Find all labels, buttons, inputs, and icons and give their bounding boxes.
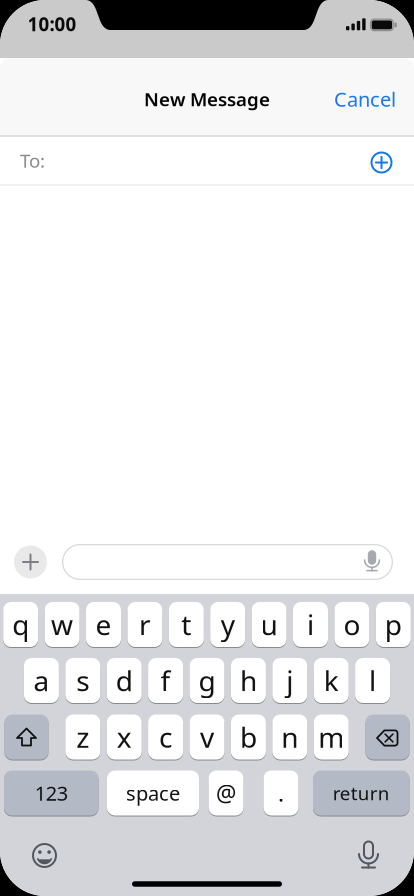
staticText: u [261, 606, 278, 643]
staticText: f [161, 662, 171, 699]
button[interactable] [370, 151, 392, 173]
button[interactable]: s [65, 657, 100, 703]
button[interactable]: space [107, 770, 199, 816]
button[interactable]: Cancel [334, 86, 396, 112]
button[interactable]: u [252, 601, 287, 647]
staticText: b [240, 718, 257, 756]
button[interactable]: t [169, 601, 204, 647]
button[interactable]: d [107, 657, 142, 703]
button[interactable]: . [263, 770, 298, 816]
button[interactable] [346, 832, 390, 876]
button[interactable]: r [127, 601, 162, 647]
button[interactable]: y [210, 601, 245, 647]
button[interactable]: k [314, 657, 349, 703]
button[interactable]: o [334, 601, 369, 647]
button[interactable]: m [314, 714, 349, 760]
staticText: Cancel [334, 86, 396, 112]
staticText: . [278, 778, 284, 808]
staticText: q [12, 606, 29, 643]
button[interactable]: j [272, 657, 307, 703]
staticText: c [159, 718, 172, 756]
staticText: To: [20, 148, 45, 173]
button[interactable]: w [45, 601, 80, 647]
staticText: k [324, 662, 339, 699]
button[interactable] [14, 545, 47, 578]
staticText: h [240, 662, 257, 699]
button[interactable]: p [376, 601, 411, 647]
button[interactable] [22, 833, 66, 877]
button[interactable]: b [231, 714, 266, 760]
staticText: g [198, 662, 215, 699]
staticText: l [369, 662, 376, 699]
staticText: v [200, 718, 214, 756]
staticText: 123 [35, 780, 68, 806]
staticText: 10:00 [27, 12, 76, 36]
button[interactable]: 123 [4, 770, 98, 816]
staticText: m [318, 718, 344, 756]
staticText: x [117, 718, 132, 756]
button[interactable]: i [293, 601, 328, 647]
staticText: i [307, 606, 314, 643]
staticText: s [76, 662, 89, 699]
staticText: r [139, 606, 151, 643]
button[interactable]: @ [208, 770, 243, 816]
staticText: e [95, 606, 111, 643]
button[interactable]: return [313, 770, 409, 816]
staticText: return [333, 781, 390, 805]
staticText: p [385, 606, 402, 643]
button[interactable]: l [355, 657, 390, 703]
button[interactable]: c [148, 714, 183, 760]
staticText: z [76, 718, 89, 756]
button[interactable]: q [3, 601, 38, 647]
staticText: t [181, 606, 191, 643]
staticText: New Message [144, 87, 270, 111]
staticText: j [286, 662, 293, 699]
staticText: o [343, 606, 360, 643]
button[interactable] [365, 714, 409, 760]
staticText: y [221, 606, 235, 643]
button[interactable]: z [65, 714, 100, 760]
button[interactable]: v [189, 714, 224, 760]
button[interactable]: n [272, 714, 307, 760]
staticText: @ [216, 778, 236, 808]
staticText: n [281, 718, 298, 756]
staticText: space [126, 780, 180, 806]
button[interactable]: f [148, 657, 183, 703]
button[interactable]: To: [0, 137, 414, 184]
button[interactable]: g [189, 657, 224, 703]
button[interactable]: x [107, 714, 142, 760]
staticText: w [51, 606, 73, 643]
button[interactable] [62, 544, 393, 580]
button[interactable]: e [86, 601, 121, 647]
button[interactable] [4, 714, 48, 760]
button[interactable]: a [24, 657, 59, 703]
staticText: d [116, 662, 133, 699]
staticText: a [33, 662, 49, 699]
button[interactable]: h [231, 657, 266, 703]
